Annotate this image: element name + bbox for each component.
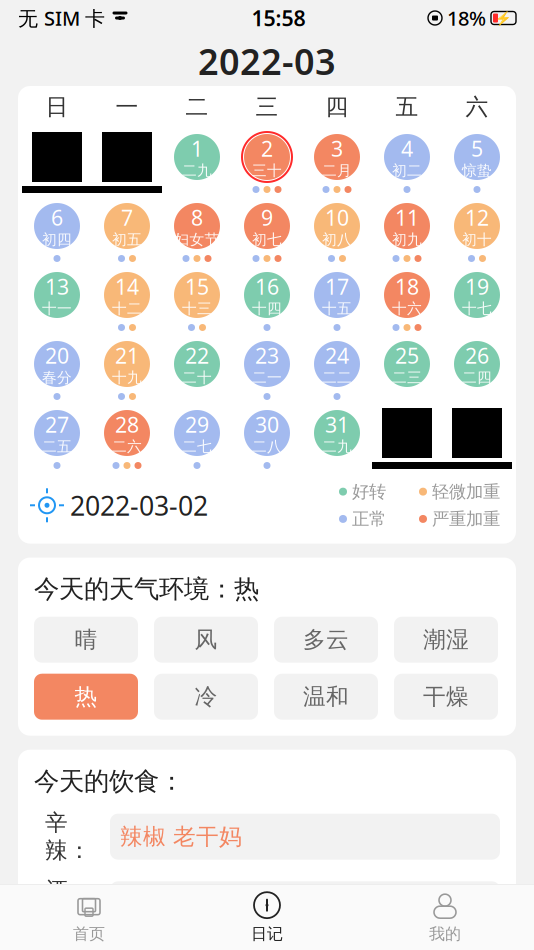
staticText: 轻微加重 [432,481,500,502]
staticText: 冷 [194,683,217,711]
button[interactable]: 风 [154,617,258,663]
staticText: 2022-03-02 [70,488,208,523]
staticText: 初八 [322,231,352,249]
staticText: 15 [185,272,209,301]
staticText: 二四 [462,369,492,387]
staticText: 二八 [252,438,282,456]
staticText: 干燥 [423,683,469,711]
staticText: 十七 [462,300,492,318]
staticText: 二九 [182,162,212,180]
staticText: 春分 [42,369,72,387]
staticText: 正常 [352,508,386,530]
button[interactable]: 首页 [0,884,178,950]
button[interactable]: 热 [34,674,138,720]
staticText: 26 [465,341,489,370]
staticText: 今天的饮食： [34,766,184,797]
button[interactable]: 干燥 [394,674,498,720]
staticText: 妇女节 [174,231,219,249]
staticText: 4 [401,134,413,163]
staticText: 温和 [303,683,349,711]
staticText: 日 [45,93,68,121]
button[interactable]: 日记 [178,884,356,950]
staticText: 27 [45,410,69,439]
staticText: 初四 [42,231,72,249]
button[interactable]: 辣椒 老干妈 [110,814,500,860]
staticText: 多云 [303,626,349,654]
staticText: 18% [447,5,486,31]
staticText: 1 [191,134,203,163]
button[interactable]: 冷 [154,674,258,720]
staticText: 23 [255,341,279,370]
staticText: 14 [115,272,139,301]
staticText: 无 SIM 卡 [18,5,105,31]
staticText: 30 [255,410,279,439]
staticText: 21 [115,341,139,370]
staticText: 初十 [462,231,492,249]
staticText: 17 [325,272,349,301]
staticText: 16 [255,272,279,301]
staticText: 风 [194,626,217,654]
staticText: 晴 [74,626,97,654]
staticText: 初七 [252,231,282,249]
staticText: 十一 [42,300,72,318]
staticText: 初二 [392,162,422,180]
staticText: 我的 [429,924,461,944]
button[interactable]: 伏特加 二锅头 [110,881,500,927]
staticText: 25 [395,341,419,370]
staticText: 9 [261,203,273,232]
staticText: 二 [185,93,208,121]
staticText: 四 [325,93,348,121]
button[interactable]: 多云 [274,617,378,663]
staticText: 6 [51,203,63,232]
staticText: 20 [45,341,69,370]
staticText: 二十 [182,369,212,387]
staticText: 二一 [252,369,282,387]
staticText: 今天的天气环境：热 [34,574,259,605]
staticText: 六 [465,93,488,121]
button[interactable]: 我的 [356,884,534,950]
staticText: 二九 [322,438,352,456]
staticText: 十五 [322,300,352,318]
staticText: 12 [465,203,489,232]
staticText: 10 [325,203,349,232]
staticText: 潮湿 [423,626,469,654]
staticText: 十二 [112,300,142,318]
staticText: 8 [191,203,203,232]
staticText: 22 [185,341,209,370]
button[interactable]: 晴 [34,617,138,663]
staticText: 惊蛰 [462,162,492,180]
button[interactable]: Selected date 2022-03-02 [34,488,208,523]
staticText: 18 [395,272,419,301]
staticText: 严重加重 [432,508,500,530]
staticText: 首页 [73,924,105,944]
staticText: 初五 [112,231,142,249]
staticText: 辣椒 老干妈 [120,823,242,850]
staticText: 19 [465,272,489,301]
button[interactable]: 潮湿 [394,617,498,663]
staticText: ⚡ [495,10,512,26]
staticText: 辛辣： [45,809,91,864]
staticText: 二六 [112,438,142,456]
button[interactable]: 温和 [274,674,378,720]
staticText: 二五 [42,438,72,456]
staticText: 31 [325,410,349,439]
staticText: 二二 [322,369,352,387]
staticText: 十三 [182,300,212,318]
staticText: 三十 [252,162,282,180]
staticText: 好转 [352,481,386,502]
staticText: 13 [45,272,69,301]
staticText: 十六 [392,300,422,318]
staticText: 伏特加 二锅头 [120,890,265,918]
staticText: 十四 [252,300,282,318]
staticText: 初九 [392,231,422,249]
staticText: 三 [255,93,278,121]
staticText: 二三 [392,369,422,387]
staticText: 15:58 [251,4,305,32]
staticText: 酒精： [45,876,91,932]
staticText: 五 [395,93,418,121]
staticText: 二七 [182,438,212,456]
staticText: 2022-03 [198,37,336,85]
staticText: 2 [261,134,273,163]
